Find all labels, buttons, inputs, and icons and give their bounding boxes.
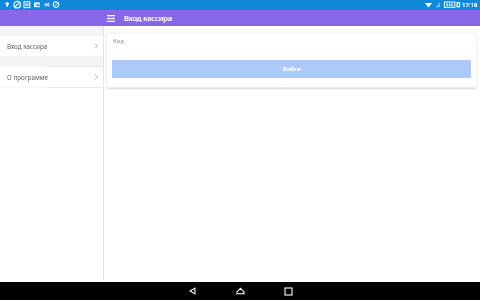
staticText: 17:18 — [462, 1, 478, 9]
staticText: Вход кассира — [124, 13, 173, 23]
button[interactable]: Вход кассира — [0, 36, 104, 56]
button[interactable]: Войти — [112, 60, 471, 78]
staticText: О программе — [7, 73, 49, 82]
button[interactable]: Recents — [276, 282, 300, 300]
staticText: Вход кассира — [7, 42, 48, 51]
button[interactable]: Menu — [103, 10, 119, 26]
button[interactable]: О программе — [0, 67, 104, 87]
staticText: Код — [113, 37, 124, 45]
button[interactable]: Back — [180, 282, 204, 300]
button[interactable]: Home — [228, 282, 252, 300]
staticText: Войти — [282, 65, 301, 73]
